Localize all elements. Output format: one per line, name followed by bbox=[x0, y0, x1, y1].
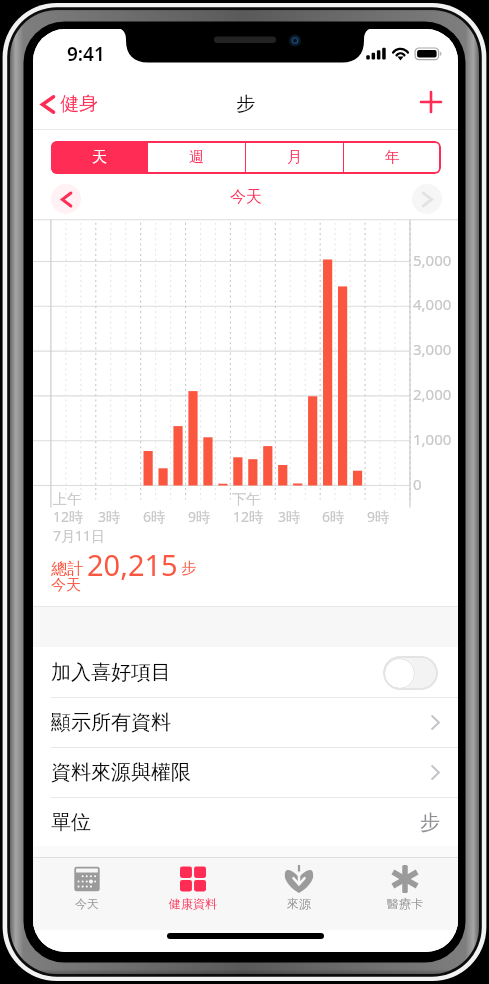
staticText: 月 bbox=[287, 148, 302, 167]
button[interactable]: 顯示所有資料 bbox=[33, 698, 458, 747]
staticText: 3時 bbox=[98, 507, 121, 526]
staticText: 9時 bbox=[188, 507, 211, 526]
staticText: 4,000 bbox=[413, 294, 452, 314]
button[interactable]: 健身 bbox=[38, 90, 98, 118]
button[interactable]: 月 bbox=[246, 141, 343, 174]
staticText: 資料來源與權限 bbox=[51, 760, 191, 785]
staticText: 來源 bbox=[287, 896, 311, 911]
staticText: 年 bbox=[385, 148, 400, 167]
button[interactable]: 週 bbox=[148, 141, 245, 174]
staticText: 1,000 bbox=[413, 429, 452, 449]
staticText: 12時 bbox=[233, 507, 264, 526]
staticText: 3,000 bbox=[413, 339, 452, 359]
button[interactable]: 來源 bbox=[246, 858, 352, 930]
button[interactable]: 醫療卡 bbox=[352, 858, 458, 930]
staticText: 0 bbox=[413, 474, 422, 494]
button[interactable]: 今天 bbox=[33, 858, 140, 930]
staticText: 步 bbox=[236, 92, 255, 116]
staticText: 今天 bbox=[75, 896, 99, 911]
staticText: 上午 bbox=[53, 491, 81, 509]
staticText: 天 bbox=[92, 148, 107, 167]
staticText: 健身 bbox=[60, 92, 98, 116]
staticText: 健康資料 bbox=[169, 896, 217, 911]
button[interactable]: Next day bbox=[412, 184, 442, 214]
button[interactable]: 加入喜好項目 bbox=[33, 648, 458, 697]
staticText: 步 bbox=[420, 810, 440, 835]
button[interactable]: 天 bbox=[51, 141, 147, 174]
staticText: 加入喜好項目 bbox=[51, 660, 171, 685]
staticText: 醫療卡 bbox=[387, 896, 423, 911]
staticText: 總計 bbox=[51, 559, 83, 579]
staticText: 5,000 bbox=[413, 250, 452, 270]
button[interactable]: 健康資料 bbox=[140, 858, 246, 930]
staticText: 單位 bbox=[51, 810, 91, 835]
button[interactable]: Add bbox=[411, 82, 451, 122]
staticText: 顯示所有資料 bbox=[51, 710, 171, 735]
staticText: 6時 bbox=[143, 507, 166, 526]
staticText: 7月11日 bbox=[53, 526, 106, 545]
button[interactable]: Previous day bbox=[51, 184, 81, 214]
button[interactable]: 年 bbox=[344, 141, 441, 174]
staticText: 下午 bbox=[232, 491, 260, 509]
staticText: 週 bbox=[189, 148, 204, 167]
staticText: 今天 bbox=[230, 187, 262, 207]
button[interactable]: 單位 bbox=[33, 798, 458, 847]
staticText: 3時 bbox=[278, 507, 301, 526]
button[interactable]: 資料來源與權限 bbox=[33, 748, 458, 797]
staticText: 20,215 bbox=[87, 545, 178, 584]
staticText: 今天 bbox=[51, 576, 81, 595]
staticText: 12時 bbox=[53, 507, 84, 526]
staticText: 2,000 bbox=[413, 384, 452, 404]
staticText: 步 bbox=[181, 559, 196, 578]
staticText: 9時 bbox=[367, 507, 390, 526]
staticText: 6時 bbox=[322, 507, 345, 526]
staticText: 9:41 bbox=[67, 41, 105, 67]
